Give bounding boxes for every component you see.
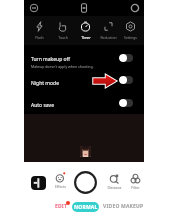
- button[interactable]: Effects: [51, 172, 69, 188]
- staticText: NORMAL: [74, 204, 98, 211]
- button[interactable]: Touch: [51, 16, 74, 45]
- staticText: Flash: [35, 35, 44, 40]
- button[interactable]: Settings: [119, 16, 142, 45]
- button[interactable]: Aspect ratio: [79, 3, 89, 13]
- staticText: Makeup doesn't apply when shooting.: [31, 64, 94, 69]
- button[interactable]: NORMAL: [72, 202, 99, 212]
- button[interactable]: [24, 92, 144, 114]
- button[interactable]: EDIT: [55, 203, 68, 210]
- staticText: Effects: [55, 184, 66, 189]
- button[interactable]: Shooting mode: [130, 3, 140, 13]
- staticText: EDIT: [55, 203, 68, 210]
- staticText: Settings: [124, 35, 137, 40]
- button[interactable]: Turn makeup off: [119, 54, 133, 62]
- button[interactable]: HDR off: [29, 3, 39, 13]
- staticText: Turn makeup off: [31, 56, 70, 63]
- staticText: Distance: [107, 185, 122, 190]
- button[interactable]: Distance: [105, 173, 123, 189]
- staticText: Night mode: [31, 80, 59, 87]
- staticText: Touch: [58, 35, 68, 40]
- staticText: Timer: [81, 35, 91, 40]
- button[interactable]: Night mode: [119, 76, 133, 84]
- button[interactable]: Reduction: [97, 16, 120, 45]
- button[interactable]: Timer: [74, 16, 97, 45]
- staticText: VIDEO: [103, 203, 120, 210]
- button[interactable]: MAKEUP: [121, 203, 144, 210]
- staticText: Reduction: [100, 35, 117, 40]
- button[interactable]: Auto save: [119, 99, 133, 107]
- button[interactable]: Shutter: [74, 171, 97, 194]
- button[interactable]: [24, 47, 144, 69]
- staticText: MAKEUP: [121, 203, 144, 210]
- button[interactable]: Gallery: [31, 176, 46, 190]
- button[interactable]: Filter: [126, 173, 144, 189]
- button[interactable]: Flash: [28, 16, 51, 45]
- staticText: Filter: [131, 185, 140, 190]
- button[interactable]: VIDEO: [103, 203, 120, 210]
- button[interactable]: [24, 69, 144, 91]
- staticText: Auto save: [31, 102, 54, 109]
